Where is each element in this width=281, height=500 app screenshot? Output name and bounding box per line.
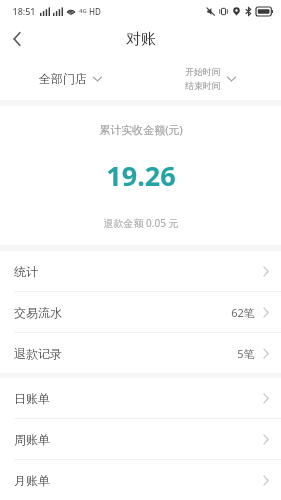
button[interactable]: 开始时间 bbox=[177, 62, 244, 95]
staticText: 月账单 bbox=[14, 473, 50, 488]
staticText: 开始时间 bbox=[185, 66, 221, 77]
staticText: HD bbox=[89, 6, 101, 17]
button[interactable]: 周账单 bbox=[0, 419, 281, 459]
staticText: 62笔 bbox=[231, 305, 255, 320]
staticText: 18:51 bbox=[12, 5, 36, 17]
staticText: 对账 bbox=[126, 30, 156, 49]
staticText: 统计 bbox=[14, 264, 38, 279]
staticText: 退款金额 0.05 元 bbox=[103, 216, 179, 230]
staticText: 交易流水 bbox=[14, 305, 62, 320]
button[interactable]: 统计 bbox=[0, 251, 281, 291]
button[interactable]: 交易流水 bbox=[0, 292, 281, 332]
staticText: 累计实收金额(元) bbox=[99, 122, 183, 137]
staticText: 全部门店 bbox=[39, 71, 87, 86]
staticText: 周账单 bbox=[14, 432, 50, 447]
staticText: 日账单 bbox=[14, 391, 50, 406]
staticText: 5笔 bbox=[237, 346, 255, 361]
button[interactable]: 退款记录 bbox=[0, 333, 281, 373]
staticText: 结束时间 bbox=[185, 80, 221, 91]
button[interactable]: 全部门店 bbox=[31, 65, 110, 92]
button[interactable]: 日账单 bbox=[0, 378, 281, 418]
staticText: 退款记录 bbox=[14, 346, 62, 361]
staticText: 19.26 bbox=[106, 157, 176, 194]
staticText: 4G bbox=[79, 7, 87, 15]
button[interactable]: 月账单 bbox=[0, 460, 281, 500]
button[interactable]: Back bbox=[0, 22, 34, 56]
